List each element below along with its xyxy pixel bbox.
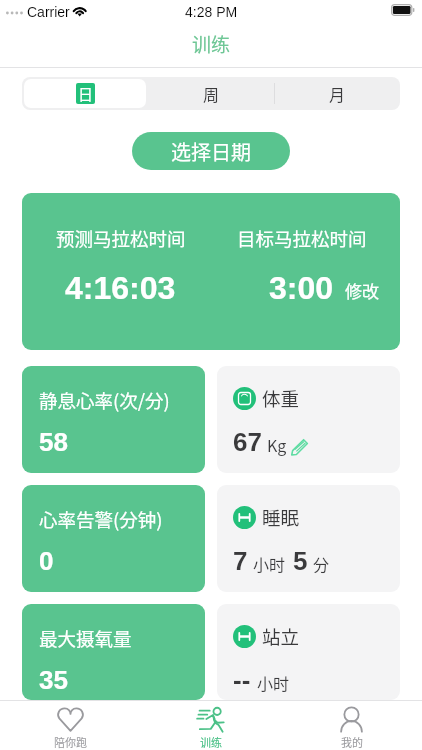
staticText: 站立	[262, 623, 300, 650]
button[interactable]: 最大摄氧量	[22, 604, 205, 700]
button[interactable]: 日	[24, 79, 146, 108]
staticText: 7	[233, 546, 248, 575]
staticText: 修改	[345, 278, 379, 303]
staticText: --	[233, 665, 251, 694]
staticText: 5	[293, 546, 308, 575]
staticText: 3:00	[269, 270, 334, 306]
staticText: 周	[203, 82, 220, 105]
button[interactable]: 我的	[281, 701, 422, 750]
button[interactable]: 训练	[140, 701, 281, 750]
button[interactable]: 月	[274, 77, 400, 110]
button[interactable]: 预测马拉松时间	[22, 193, 400, 350]
staticText: 分	[313, 552, 330, 575]
staticText: 训练	[192, 30, 231, 58]
staticText: 静息心率(次/分)	[39, 387, 170, 414]
staticText: 4:16:03	[65, 270, 176, 306]
button[interactable]: 体重	[217, 366, 400, 473]
staticText: 我的	[341, 734, 363, 750]
staticText: 最大摄氧量	[39, 625, 132, 652]
staticText: 心率告警(分钟)	[39, 506, 163, 533]
button[interactable]: 心率告警(分钟)	[22, 485, 205, 592]
staticText: 0	[39, 546, 54, 575]
staticText: Carrier	[27, 4, 70, 20]
button[interactable]: 睡眠	[217, 485, 400, 592]
staticText: 小时	[253, 552, 286, 575]
staticText: 选择日期	[171, 137, 251, 166]
staticText: 35	[39, 665, 68, 694]
button[interactable]: 站立	[217, 604, 400, 700]
staticText: 58	[39, 427, 68, 456]
staticText: 小时	[257, 671, 290, 694]
button[interactable]: 周	[148, 77, 274, 110]
staticText: 训练	[200, 734, 222, 750]
staticText: 睡眠	[262, 504, 300, 531]
staticText: 目标马拉松时间	[237, 225, 367, 252]
staticText: 67	[233, 427, 262, 456]
staticText: 日	[78, 83, 94, 104]
staticText: Kg	[267, 433, 287, 456]
button[interactable]: 选择日期	[132, 132, 290, 170]
button[interactable]: 静息心率(次/分)	[22, 366, 205, 473]
staticText: 预测马拉松时间	[56, 225, 186, 252]
staticText: 陪你跑	[54, 734, 87, 750]
staticText: 4:28 PM	[185, 4, 238, 20]
button[interactable]: 陪你跑	[0, 701, 140, 750]
staticText: 体重	[262, 385, 300, 412]
staticText: 月	[329, 82, 346, 105]
